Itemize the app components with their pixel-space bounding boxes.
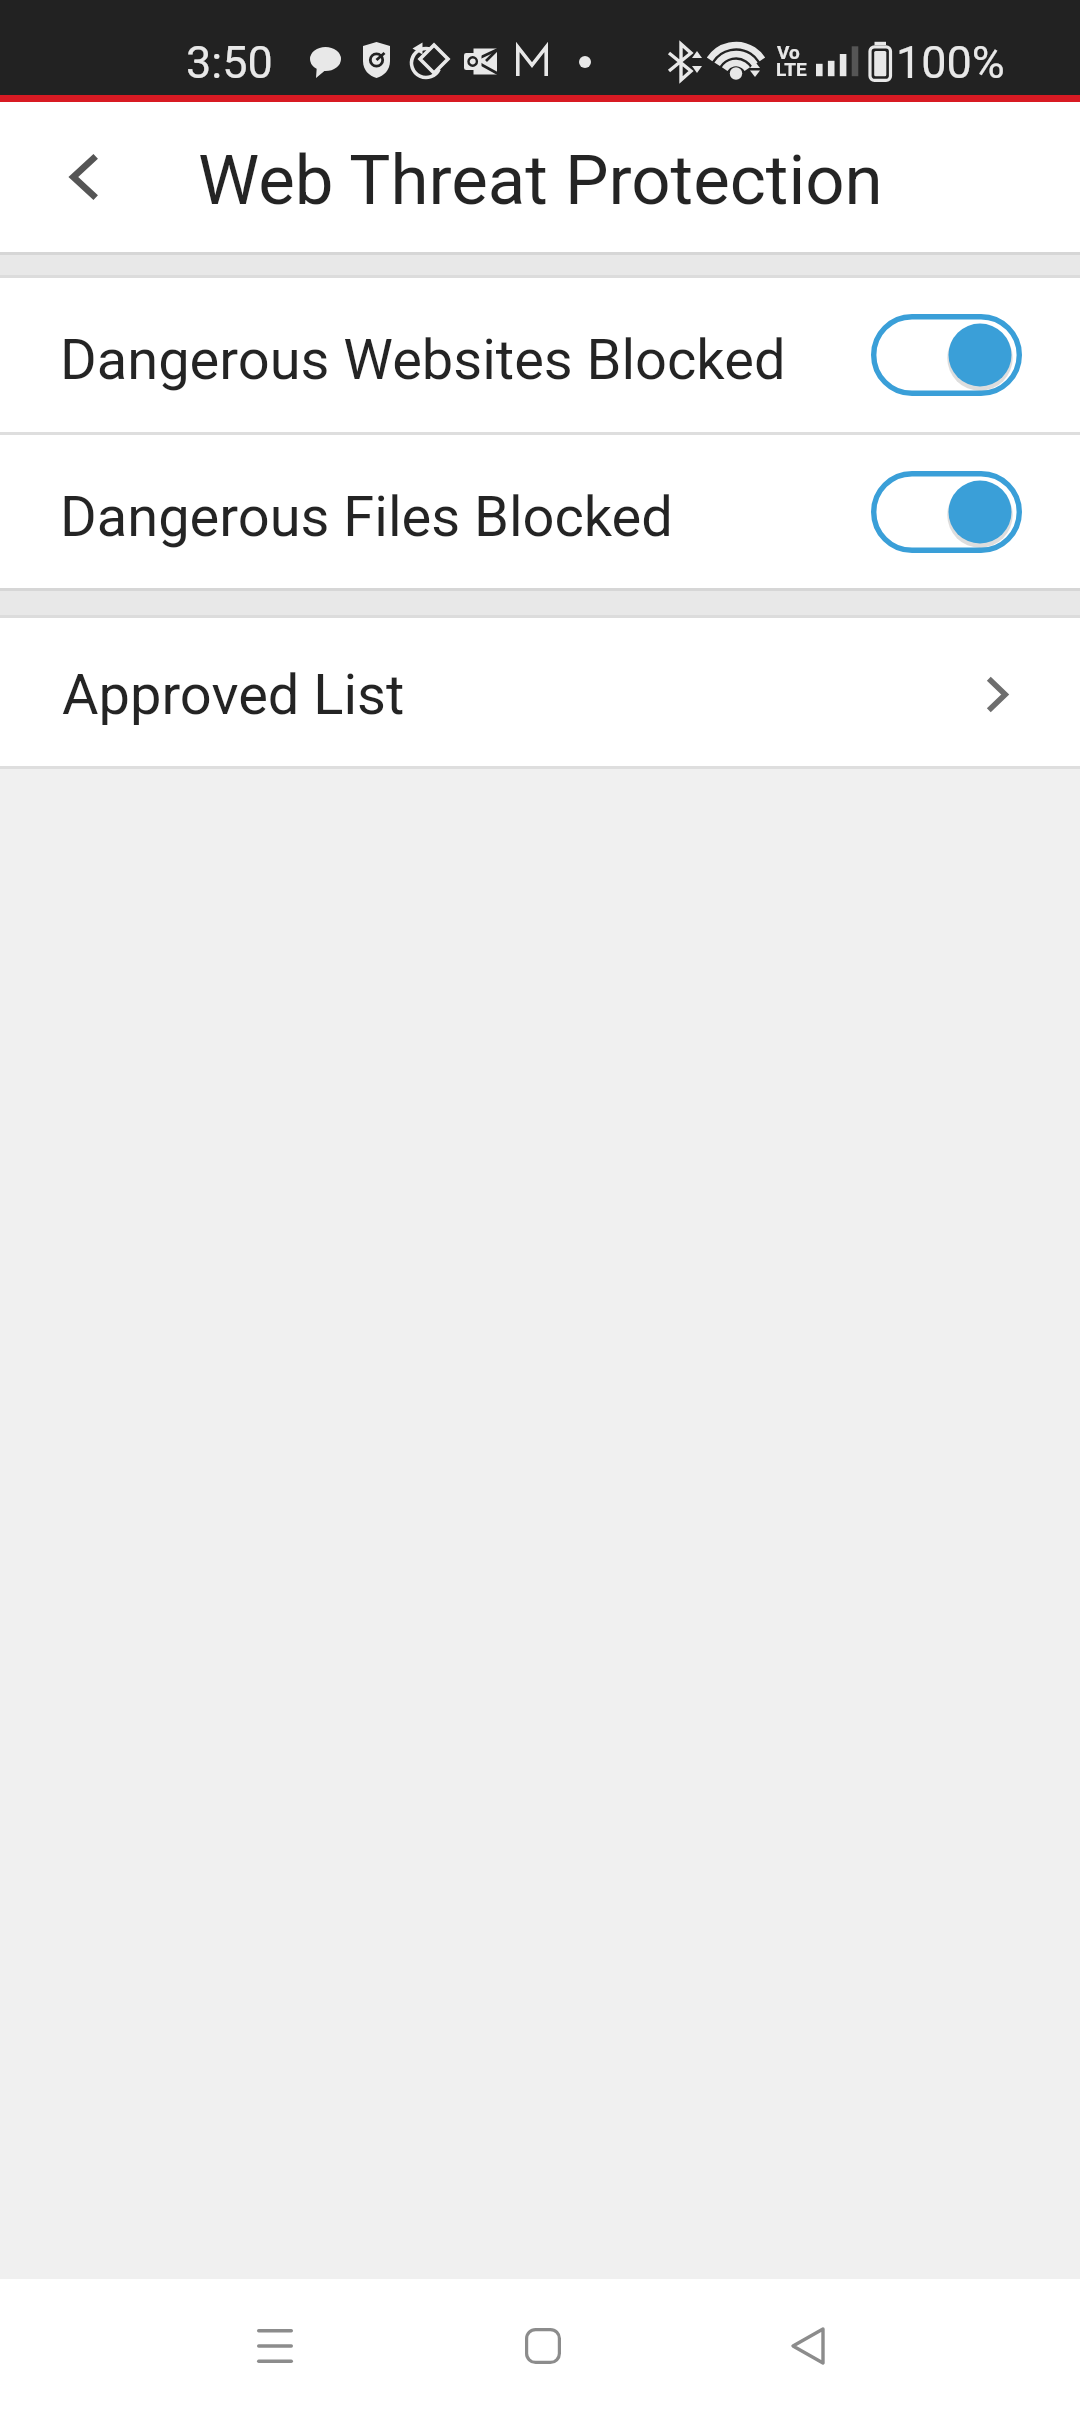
button[interactable]: Toggle, on	[871, 471, 1022, 553]
button[interactable]: Home	[463, 2279, 623, 2412]
button[interactable]: Back	[29, 117, 139, 237]
staticText: Dangerous Websites Blocked	[60, 327, 786, 393]
staticText: LTE	[776, 58, 807, 80]
button[interactable]: Approved List	[0, 618, 1080, 766]
button[interactable]: Back	[728, 2279, 888, 2412]
staticText: Web Threat Protection	[198, 140, 883, 221]
staticText: Approved List	[62, 662, 405, 728]
button[interactable]: Dangerous Files Blocked	[0, 435, 1080, 588]
button[interactable]: Dangerous Websites Blocked	[0, 278, 1080, 432]
staticText: 100%	[896, 36, 1005, 89]
button[interactable]: Recent apps	[195, 2279, 355, 2412]
staticText: Vo	[777, 41, 800, 63]
staticText: 3:50	[186, 36, 273, 89]
button[interactable]: Toggle, on	[871, 314, 1022, 396]
staticText: Dangerous Files Blocked	[60, 484, 673, 550]
